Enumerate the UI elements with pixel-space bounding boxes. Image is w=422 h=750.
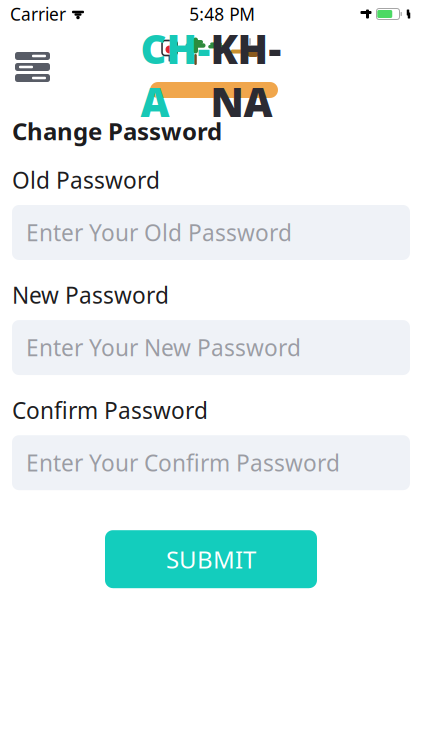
staticText: Enter Your Old Password: [26, 217, 292, 247]
staticText: New Password: [12, 280, 169, 310]
staticText: Carrier: [10, 2, 66, 25]
button[interactable]: Enter Your New Password: [12, 320, 410, 375]
staticText: Change Password: [12, 115, 222, 147]
staticText: Enter Your Confirm Password: [26, 448, 340, 478]
staticText: SUBMIT: [166, 543, 256, 575]
button[interactable]: SUBMIT: [105, 530, 317, 588]
button[interactable]: Enter Your Old Password: [12, 205, 410, 260]
staticText: Old Password: [12, 165, 160, 195]
staticText: CHA: [140, 22, 210, 128]
staticText: 5:48 PM: [189, 2, 255, 25]
staticText: Enter Your New Password: [26, 332, 301, 363]
button[interactable]: Menu: [7, 46, 58, 88]
staticText: KHNA: [210, 22, 281, 128]
staticText: Confirm Password: [12, 395, 208, 425]
button[interactable]: Enter Your Confirm Password: [12, 435, 410, 490]
